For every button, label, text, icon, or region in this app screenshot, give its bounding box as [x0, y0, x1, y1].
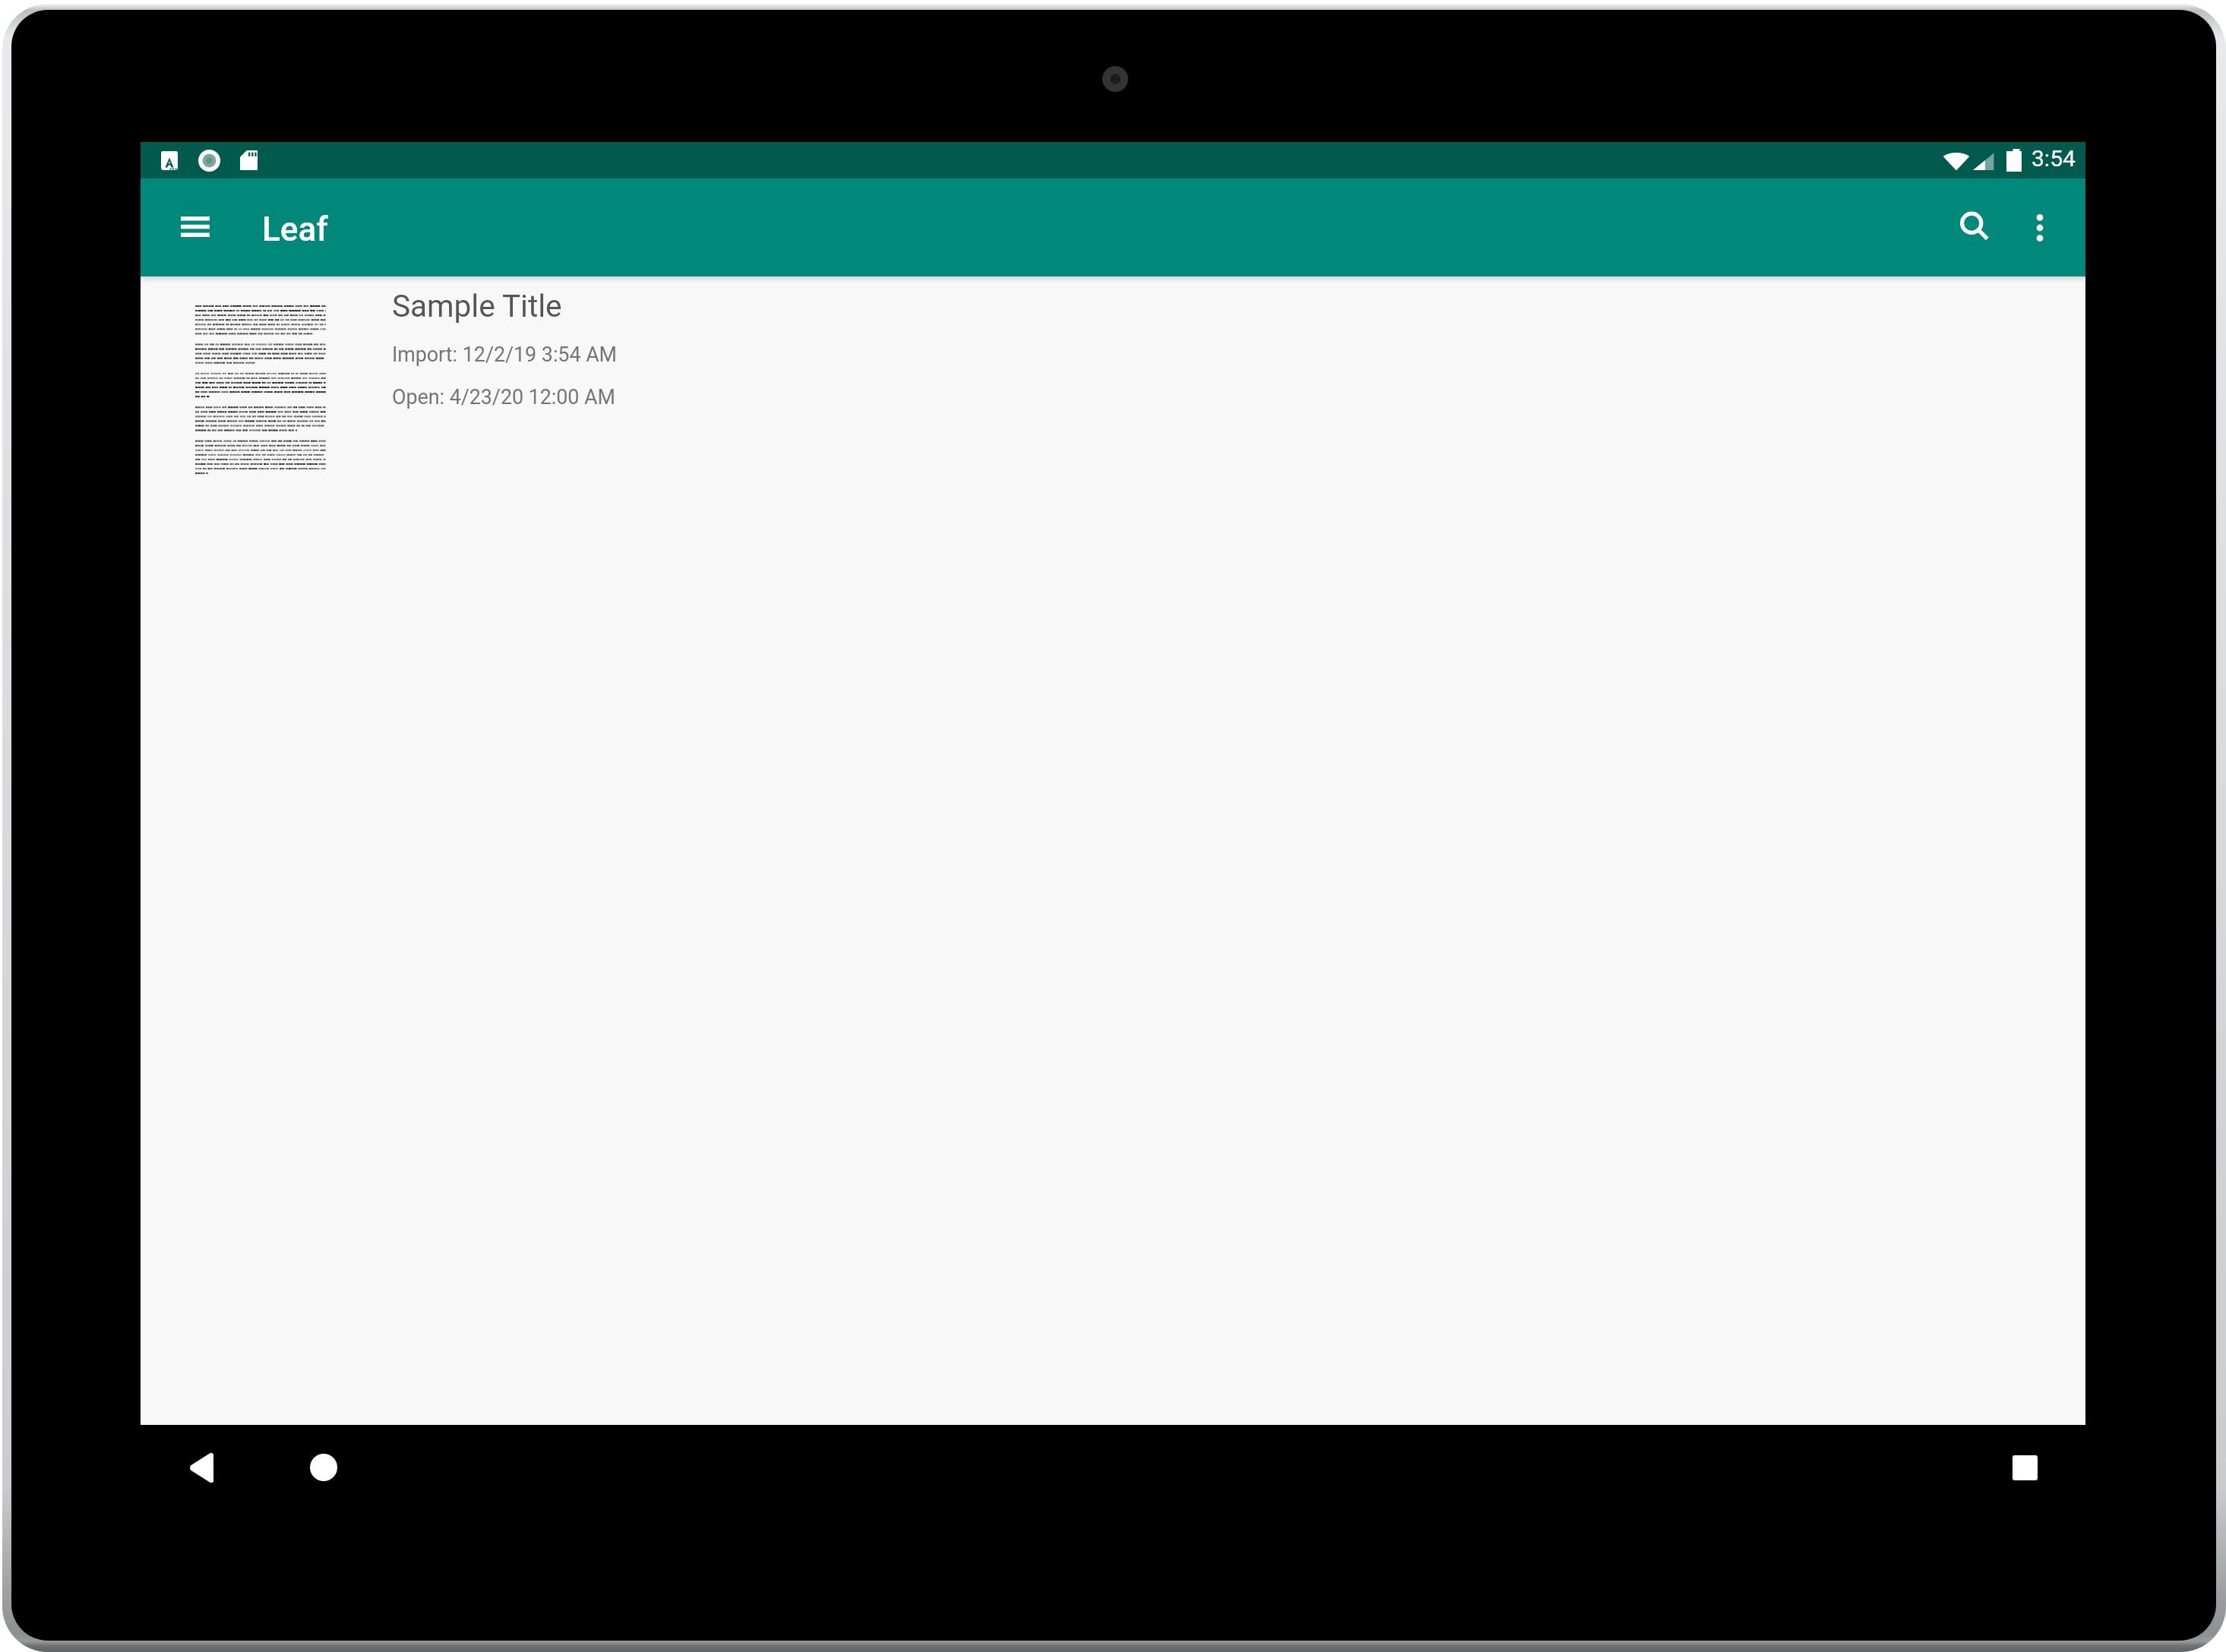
button[interactable]: Sample Title: [141, 276, 2085, 520]
button[interactable]: Search: [1940, 192, 2010, 262]
staticText: 3:54: [2032, 145, 2076, 172]
staticText: Open: 4/23/20 12:00 AM: [392, 385, 615, 409]
staticText: Sample Title: [392, 288, 562, 324]
button[interactable]: More options: [2005, 193, 2075, 263]
button[interactable]: Open navigation menu: [160, 191, 230, 261]
staticText: Import: 12/2/19 3:54 AM: [392, 343, 618, 366]
button[interactable]: Home: [286, 1429, 362, 1505]
button[interactable]: Back: [163, 1429, 239, 1505]
button[interactable]: Recent apps: [1987, 1429, 2063, 1505]
staticText: Leaf: [262, 210, 328, 249]
